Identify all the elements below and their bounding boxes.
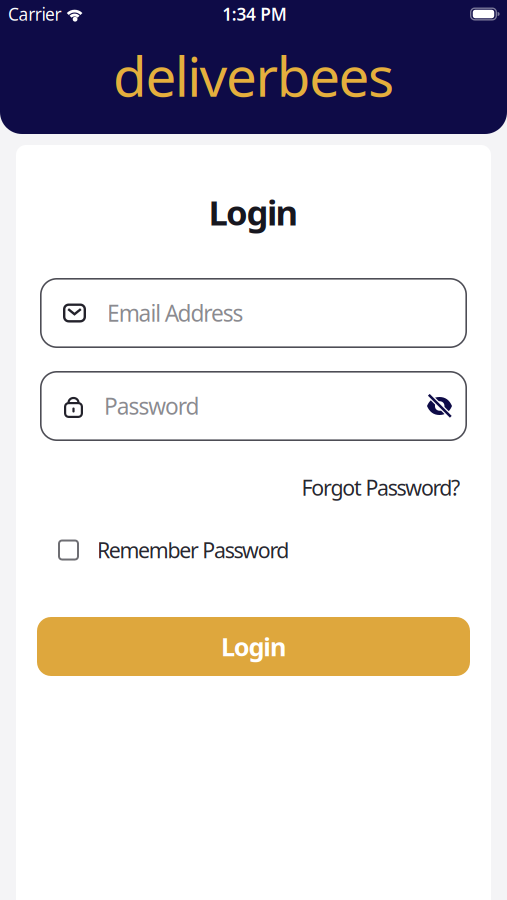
staticText: Email Address bbox=[107, 298, 244, 328]
staticText: Login bbox=[221, 630, 286, 663]
button[interactable]: Forgot Password? bbox=[301, 473, 460, 502]
button[interactable]: Password bbox=[40, 371, 467, 441]
staticText: Remember Password bbox=[97, 536, 289, 564]
staticText: Forgot Password? bbox=[301, 473, 460, 502]
staticText: Login bbox=[208, 189, 298, 235]
button[interactable]: Show password bbox=[426, 396, 467, 416]
staticText: Carrier bbox=[8, 2, 62, 25]
staticText: deliverbees bbox=[113, 39, 394, 112]
staticText: 1:34 PM bbox=[222, 2, 287, 25]
button[interactable]: Email Address bbox=[40, 278, 467, 348]
staticText: Password bbox=[104, 391, 200, 421]
button[interactable]: Login bbox=[37, 617, 470, 676]
button[interactable]: Remember Password bbox=[58, 536, 289, 564]
